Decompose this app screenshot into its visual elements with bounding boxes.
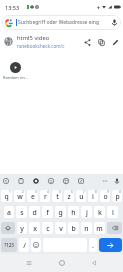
staticText: j	[86, 208, 88, 217]
button[interactable]: Home	[54, 255, 70, 271]
staticText: /	[23, 241, 26, 250]
button[interactable]: h	[68, 206, 79, 218]
staticText: i	[92, 192, 94, 201]
staticText: z	[67, 192, 71, 201]
button[interactable]: More options	[100, 176, 110, 186]
staticText: 13:53	[5, 4, 20, 11]
staticText: 0	[119, 190, 121, 194]
staticText: 9	[107, 190, 109, 194]
button[interactable]: Edit	[108, 35, 122, 49]
staticText: l	[112, 208, 114, 217]
button[interactable]: 3	[27, 190, 38, 202]
button[interactable]: Emoji	[46, 176, 56, 186]
staticText: c	[46, 224, 50, 233]
button[interactable]: Enter	[99, 238, 122, 252]
staticText: p	[115, 192, 120, 201]
staticText: o	[103, 192, 108, 201]
button[interactable]: k	[94, 206, 105, 218]
button[interactable]: s	[16, 206, 27, 218]
staticText: a	[7, 208, 11, 217]
button[interactable]: Share	[80, 35, 94, 49]
button[interactable]: Clipboard	[16, 176, 26, 186]
button[interactable]: Translate	[76, 176, 86, 186]
staticText: e	[31, 192, 35, 201]
staticText: m	[96, 224, 103, 233]
staticText: Random im...	[3, 75, 28, 80]
staticText: 5	[59, 190, 61, 194]
staticText: d	[32, 208, 37, 217]
button[interactable]: 5	[52, 190, 62, 202]
staticText: 4	[47, 190, 49, 194]
button[interactable]: Play video	[10, 62, 21, 73]
button[interactable]: .	[89, 238, 97, 252]
staticText: w	[17, 192, 23, 201]
staticText: notebookcheck.com/c	[17, 43, 65, 49]
button[interactable]: y	[17, 222, 27, 234]
staticText: 8	[95, 190, 97, 194]
staticText: x	[33, 224, 37, 233]
button[interactable]: v	[55, 222, 66, 234]
staticText: 7	[83, 190, 85, 194]
button[interactable]: Copy	[94, 35, 108, 49]
button[interactable]: a	[4, 206, 14, 218]
button[interactable]: Emoji	[31, 238, 41, 252]
staticText: 2	[22, 190, 24, 194]
button[interactable]: l	[107, 206, 118, 218]
staticText: html5 video	[17, 34, 50, 42]
button[interactable]: Theme	[61, 176, 71, 186]
button[interactable]: 0	[112, 190, 122, 202]
staticText: ?123	[4, 242, 14, 248]
staticText: 1	[9, 190, 11, 194]
button[interactable]: c	[42, 222, 53, 234]
button[interactable]: g	[55, 206, 66, 218]
staticText: q	[4, 192, 9, 201]
button[interactable]: n	[81, 222, 92, 234]
button[interactable]: Backspace	[107, 222, 122, 234]
staticText: f	[46, 208, 49, 217]
button[interactable]: ?123	[1, 238, 17, 252]
button[interactable]: Shift	[1, 222, 15, 234]
staticText: y	[20, 224, 24, 233]
button[interactable]: b	[68, 222, 79, 234]
staticText: h	[71, 208, 76, 217]
button[interactable]: 2	[14, 190, 25, 202]
staticText: 3	[35, 190, 37, 194]
button[interactable]: d	[29, 206, 40, 218]
staticText: v	[59, 224, 63, 233]
button[interactable]: 1	[1, 190, 12, 202]
button[interactable]: Recents	[21, 255, 37, 271]
staticText: r	[44, 192, 47, 201]
button[interactable]: Settings	[31, 176, 41, 186]
staticText: k	[98, 208, 102, 217]
staticText: t	[56, 192, 59, 201]
button[interactable]: j	[81, 206, 92, 218]
button[interactable]: 9	[100, 190, 110, 202]
button[interactable]: 7	[76, 190, 86, 202]
staticText: b	[71, 224, 76, 233]
button[interactable]: Suchbegriff oder Webadresse eing	[2, 15, 121, 30]
button[interactable]: 4	[40, 190, 50, 202]
button[interactable]: 6	[64, 190, 74, 202]
staticText: g	[58, 208, 63, 217]
button[interactable]: x	[29, 222, 40, 234]
button[interactable]: Back	[1, 176, 11, 186]
staticText: n	[84, 224, 89, 233]
button[interactable]: Voice input	[112, 176, 122, 186]
staticText: u	[79, 192, 84, 201]
button[interactable]: html5 video	[0, 33, 123, 50]
staticText: Suchbegriff oder Webadresse eing	[18, 19, 110, 26]
button[interactable]: 8	[88, 190, 98, 202]
button[interactable]: f	[42, 206, 53, 218]
button[interactable]: m	[94, 222, 105, 234]
staticText: 6	[71, 190, 73, 194]
button[interactable]: Back	[86, 255, 102, 271]
staticText: .	[92, 241, 94, 250]
staticText: s	[20, 208, 24, 217]
button[interactable]: Voice search	[110, 18, 119, 27]
button[interactable]: /	[19, 238, 29, 252]
